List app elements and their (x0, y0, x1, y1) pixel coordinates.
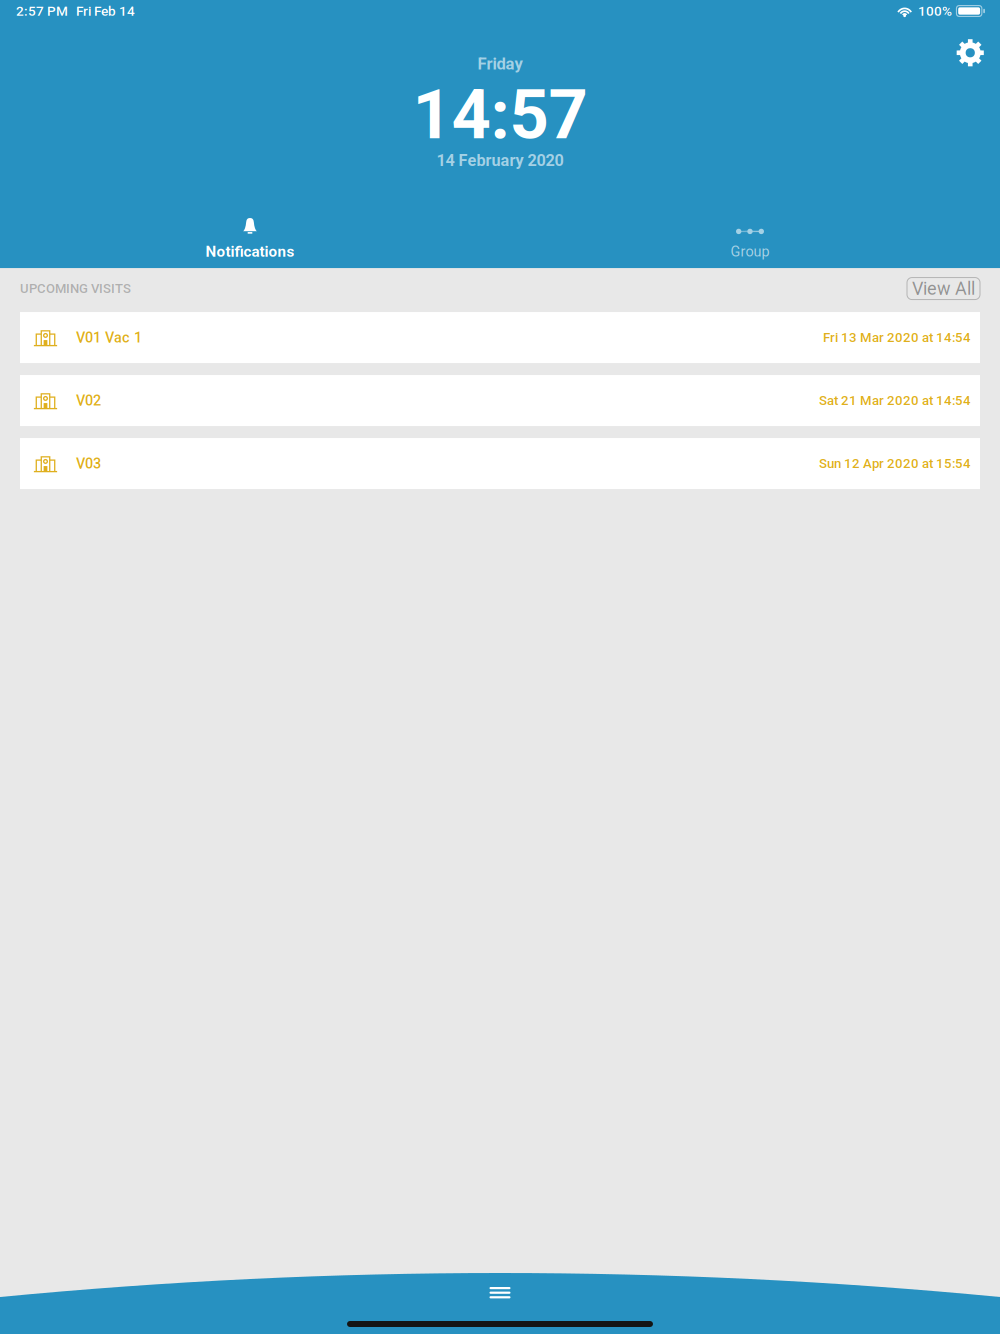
staticText: Group (730, 243, 769, 260)
button[interactable]: Group (500, 212, 1000, 266)
staticText: 100% (918, 3, 952, 19)
button[interactable]: Notifications (0, 212, 500, 266)
staticText: V03 (76, 455, 101, 472)
staticText: Fri Feb 14 (76, 3, 135, 19)
staticText: V02 (76, 392, 101, 409)
button[interactable]: V02 (20, 375, 980, 426)
button[interactable]: Menu (480, 1278, 519, 1307)
staticText: Notifications (205, 243, 294, 260)
staticText: Sun 12 Apr 2020 at 15:54 (819, 456, 971, 471)
button[interactable]: V03 (20, 438, 980, 489)
staticText: Fri 13 Mar 2020 at 14:54 (823, 330, 971, 345)
button[interactable]: V01 Vac 1 (20, 312, 980, 363)
button[interactable]: Settings (956, 22, 1000, 66)
staticText: 2:57 PM (16, 3, 68, 19)
staticText: View All (912, 278, 975, 299)
staticText: 14:57 (412, 74, 587, 155)
staticText: Sat 21 Mar 2020 at 14:54 (819, 393, 971, 408)
staticText: UPCOMING VISITS (20, 281, 131, 296)
button[interactable]: View All (907, 278, 980, 303)
staticText: Friday (477, 54, 522, 73)
staticText: V01 Vac 1 (76, 329, 142, 346)
staticText: 14 February 2020 (436, 151, 563, 170)
